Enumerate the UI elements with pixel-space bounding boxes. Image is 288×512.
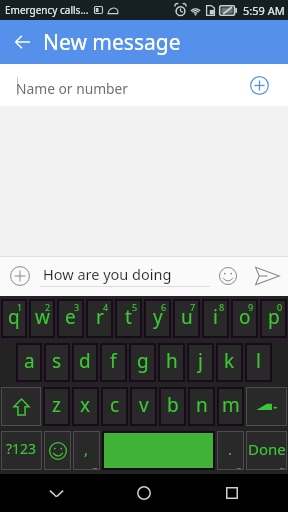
staticText: 5:59 AM [243,3,285,18]
staticText: m [222,392,240,418]
button[interactable]: Attach [0,256,40,296]
button[interactable]: Recents [212,474,252,512]
button[interactable]: j [188,344,213,381]
button[interactable]: e [58,300,83,337]
staticText: 8 [219,301,225,313]
button[interactable]: , [73,431,100,470]
staticText: j [198,348,203,374]
button[interactable]: Emoji [44,431,71,470]
staticText: q [8,304,20,330]
button[interactable]: b [160,388,185,425]
staticText: n [196,392,208,418]
button[interactable]: Space [103,432,214,469]
staticText: 2 [45,301,51,313]
staticText: o [239,304,251,330]
button[interactable]: n [189,388,214,425]
button[interactable]: y [145,300,170,337]
button[interactable]: d [73,344,97,381]
button[interactable]: . [217,431,244,470]
button[interactable]: l [246,344,271,381]
button[interactable]: z [44,388,69,425]
staticText: u [181,304,193,330]
button[interactable]: t [116,300,141,337]
staticText: s [52,348,62,374]
button[interactable]: Done [246,431,287,470]
staticText: _ [237,457,241,469]
staticText: k [224,348,235,374]
staticText: v [139,392,149,418]
staticText: ?123 [6,439,37,458]
button[interactable]: Shift [1,387,41,426]
button[interactable]: c [102,388,127,425]
button[interactable]: i [203,300,228,337]
staticText: r [96,304,104,330]
staticText: z [52,392,61,418]
staticText: Emergency calls… [5,3,89,17]
staticText: x [80,392,91,418]
button[interactable]: g [130,344,155,381]
button[interactable]: q [2,300,26,337]
staticText: a [24,348,35,374]
button[interactable]: Send [246,256,288,296]
staticText: e [65,304,76,330]
staticText: How are you doing [43,264,172,284]
button[interactable]: k [217,344,242,381]
button[interactable]: Add recipient [246,72,272,98]
button[interactable]: ?123 [1,431,42,470]
staticText: _ [280,457,284,469]
button[interactable]: x [73,388,98,425]
button[interactable]: Home [124,474,164,512]
staticText: 0 [277,301,283,313]
button[interactable]: h [159,344,184,381]
button[interactable]: Back [0,20,44,64]
staticText: New message [43,28,181,57]
button[interactable]: w [30,300,54,337]
staticText: c [110,392,120,418]
button[interactable]: Emoji [210,258,246,294]
staticText: 4 [103,301,109,313]
staticText: . [228,439,233,459]
button[interactable]: o [232,300,257,337]
staticText: l [256,348,261,374]
staticText: b [167,392,179,418]
staticText: 6 [161,301,167,313]
staticText: w [35,304,50,330]
staticText: 7 [190,301,196,313]
button[interactable]: Backspace [246,387,287,426]
staticText: t [125,304,132,330]
button[interactable]: u [174,300,199,337]
staticText: 5 [132,301,138,313]
button[interactable]: f [101,344,126,381]
staticText: i [213,304,218,330]
button[interactable]: Hide keyboard [36,474,76,512]
staticText: 1 [17,301,23,313]
staticText: g [137,348,149,374]
button[interactable]: v [131,388,156,425]
staticText: f [110,348,117,374]
staticText: y [153,304,163,330]
button[interactable]: p [261,300,286,337]
staticText: 3 [74,301,80,313]
button[interactable]: a [17,344,41,381]
button[interactable]: s [45,344,69,381]
button[interactable]: m [218,388,243,425]
staticText: p [268,304,280,330]
staticText: h [166,348,178,374]
staticText: 9 [248,301,254,313]
staticText: d [79,348,91,374]
staticText: _ [93,457,97,469]
staticText: Name or number [16,79,129,98]
staticText: Done [248,439,286,459]
button[interactable]: r [87,300,112,337]
staticText: , [84,439,89,459]
